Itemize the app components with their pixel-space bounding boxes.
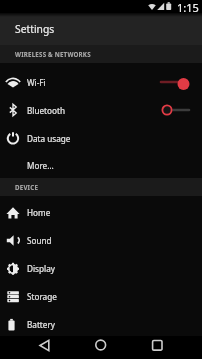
staticText: Battery	[27, 319, 56, 330]
staticText: WIRELESS & NETWORKS	[15, 50, 91, 58]
button[interactable]: More…	[0, 152, 202, 178]
staticText: DEVICE	[15, 183, 39, 191]
button[interactable]: Data usage	[0, 124, 202, 152]
staticText: 1:15	[177, 0, 199, 13]
staticText: Storage	[27, 291, 57, 302]
button[interactable]: Sound	[0, 226, 202, 254]
button[interactable]	[159, 72, 191, 92]
staticText: Bluetooth	[27, 105, 65, 116]
staticText: Settings	[15, 22, 55, 36]
button[interactable]: Bluetooth	[0, 96, 202, 124]
button[interactable]: Wi-Fi	[0, 68, 202, 96]
button[interactable]: Home	[0, 198, 202, 226]
button[interactable]: Display	[0, 254, 202, 282]
button[interactable]	[0, 336, 68, 359]
staticText: Wi-Fi	[27, 77, 46, 88]
staticText: Home	[27, 207, 51, 218]
staticText: Sound	[27, 235, 52, 246]
button[interactable]	[159, 100, 191, 120]
button[interactable]: Storage	[0, 282, 202, 310]
button[interactable]	[68, 336, 135, 359]
staticText: Display	[27, 263, 55, 274]
staticText: More…	[27, 160, 54, 171]
button[interactable]: Battery	[0, 310, 202, 338]
staticText: Data usage	[27, 133, 71, 144]
button[interactable]	[135, 336, 202, 359]
